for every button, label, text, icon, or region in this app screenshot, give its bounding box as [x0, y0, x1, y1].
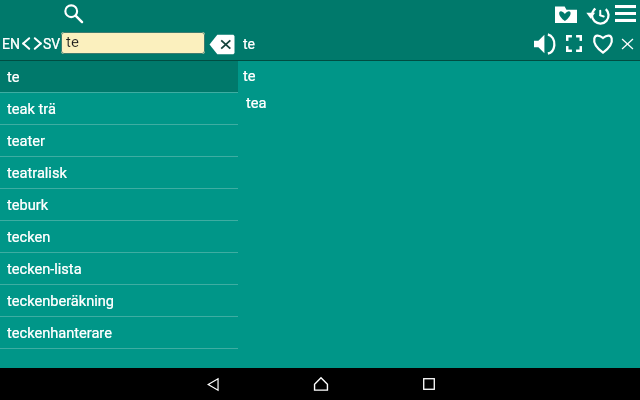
staticText: teater — [7, 132, 45, 149]
button[interactable]: Speak — [529, 27, 558, 60]
button[interactable]: te — [61, 32, 205, 54]
button[interactable]: Folders — [552, 0, 580, 27]
staticText: teckenberäkning — [7, 292, 114, 309]
button[interactable]: Back — [190, 368, 235, 400]
button[interactable]: teckenberäkning — [0, 285, 238, 317]
button[interactable]: tea — [246, 94, 267, 111]
button[interactable]: Recents — [406, 368, 451, 400]
staticText: tecken-lista — [7, 260, 82, 277]
button[interactable]: tecken — [0, 221, 238, 253]
staticText: te — [243, 67, 256, 84]
button[interactable]: teatralisk — [0, 157, 238, 189]
button[interactable]: te — [243, 67, 256, 84]
button[interactable]: teburk — [0, 189, 238, 221]
staticText: teburk — [7, 196, 49, 213]
button[interactable]: History — [583, 0, 611, 27]
button[interactable]: teak trä — [0, 93, 238, 125]
button[interactable]: Home — [298, 368, 343, 400]
button[interactable]: tecken-lista — [0, 253, 238, 285]
staticText: tea — [246, 94, 267, 111]
button[interactable]: teckenhanterare — [0, 317, 238, 349]
staticText: teatralisk — [7, 164, 67, 181]
button[interactable]: te — [0, 61, 238, 93]
button[interactable]: teater — [0, 125, 238, 157]
button[interactable]: Close — [613, 27, 640, 60]
staticText: tecken — [7, 228, 51, 245]
button[interactable]: Menu — [611, 0, 639, 27]
button[interactable]: EN — [2, 36, 61, 52]
button[interactable]: Clear — [208, 32, 235, 56]
staticText: te — [66, 33, 79, 51]
staticText: EN — [2, 36, 20, 52]
staticText: teckenhanterare — [7, 324, 112, 341]
staticText: te — [243, 36, 256, 52]
staticText: SV — [43, 36, 61, 52]
button[interactable]: Favorite — [588, 27, 617, 60]
button[interactable]: Fullscreen — [559, 27, 588, 60]
staticText: teak trä — [7, 100, 56, 117]
staticText: te — [7, 68, 20, 85]
button[interactable]: Search — [60, 0, 87, 27]
